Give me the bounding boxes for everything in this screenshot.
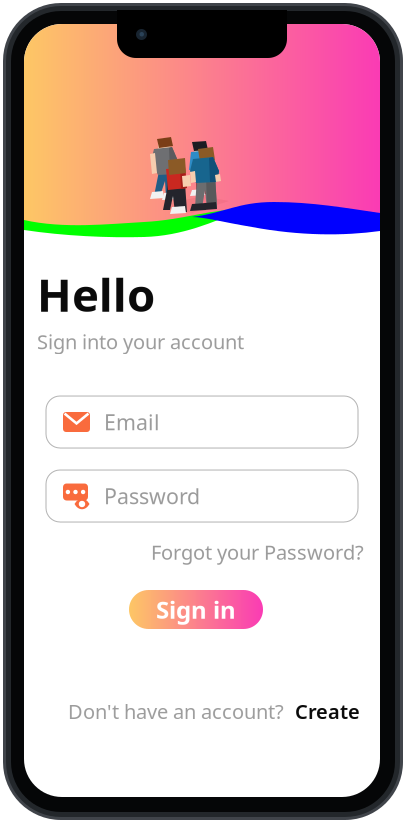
button[interactable]: Password <box>46 470 358 522</box>
staticText: Sign into your account <box>37 328 244 355</box>
staticText: Forgot your Password? <box>151 539 364 565</box>
staticText: Hello <box>37 264 155 324</box>
staticText: Sign in <box>156 594 236 625</box>
staticText: Create <box>295 698 360 725</box>
button[interactable]: Forgot your Password? <box>40 541 364 563</box>
staticText: Password <box>104 482 200 510</box>
staticText: Email <box>104 408 160 436</box>
button[interactable]: Create <box>295 698 360 725</box>
staticText: Don't have an account? <box>68 698 284 725</box>
button[interactable]: Sign in <box>129 590 263 629</box>
button[interactable]: Email <box>46 396 358 448</box>
